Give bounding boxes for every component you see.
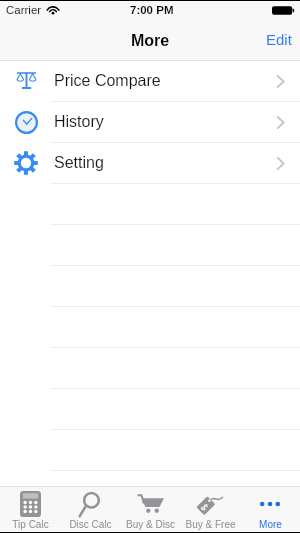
button[interactable]: Price Compare <box>0 61 300 101</box>
staticText: Buy & Free <box>185 519 236 530</box>
button[interactable]: Disc Calc <box>60 487 120 532</box>
staticText: More <box>131 32 170 50</box>
staticText: Carrier <box>6 4 42 17</box>
button[interactable]: More <box>240 487 300 532</box>
staticText: Buy & Disc <box>126 519 175 530</box>
staticText: Setting <box>54 154 104 172</box>
staticText: History <box>54 113 104 131</box>
staticText: 7:00 PM <box>130 4 174 17</box>
button[interactable]: Buy & Disc <box>120 487 180 532</box>
button[interactable]: Edit <box>258 22 300 57</box>
button[interactable]: History <box>0 102 300 142</box>
staticText: More <box>259 519 282 530</box>
button[interactable]: Buy & Free <box>180 487 240 532</box>
staticText: Edit <box>266 31 292 48</box>
staticText: Tip Calc <box>12 519 49 530</box>
button[interactable]: Tip Calc <box>0 487 60 532</box>
button[interactable]: Setting <box>0 143 300 183</box>
staticText: Price Compare <box>54 72 161 90</box>
staticText: Disc Calc <box>69 519 112 530</box>
